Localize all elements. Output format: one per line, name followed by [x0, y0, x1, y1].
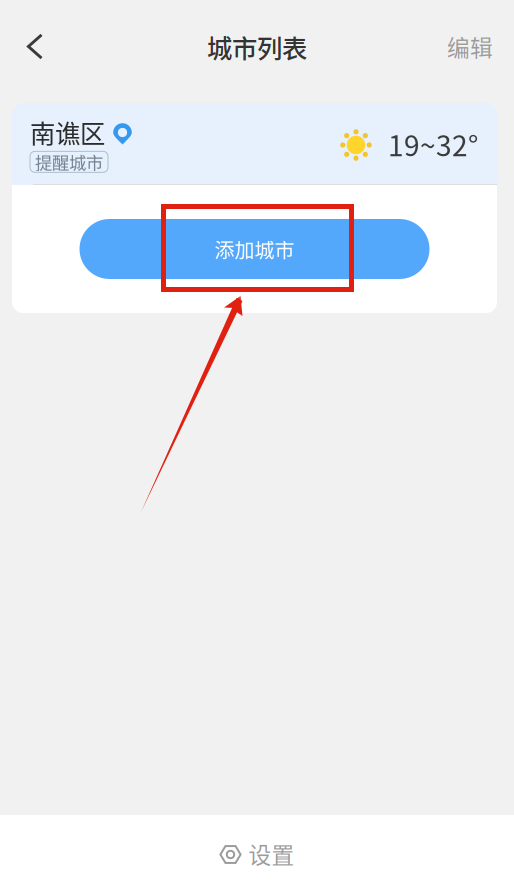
- staticText: 提醒城市: [35, 149, 103, 174]
- button[interactable]: 添加城市: [79, 219, 429, 279]
- staticText: 南谯区: [30, 114, 105, 150]
- button[interactable]: 设置: [0, 815, 514, 896]
- staticText: 编辑: [447, 30, 493, 63]
- staticText: 19~32°: [388, 124, 478, 164]
- staticText: 设置: [248, 837, 294, 870]
- button[interactable]: 编辑: [426, 0, 514, 93]
- button[interactable]: Back: [0, 0, 70, 93]
- staticText: 添加城市: [214, 234, 294, 263]
- staticText: 城市列表: [207, 29, 307, 65]
